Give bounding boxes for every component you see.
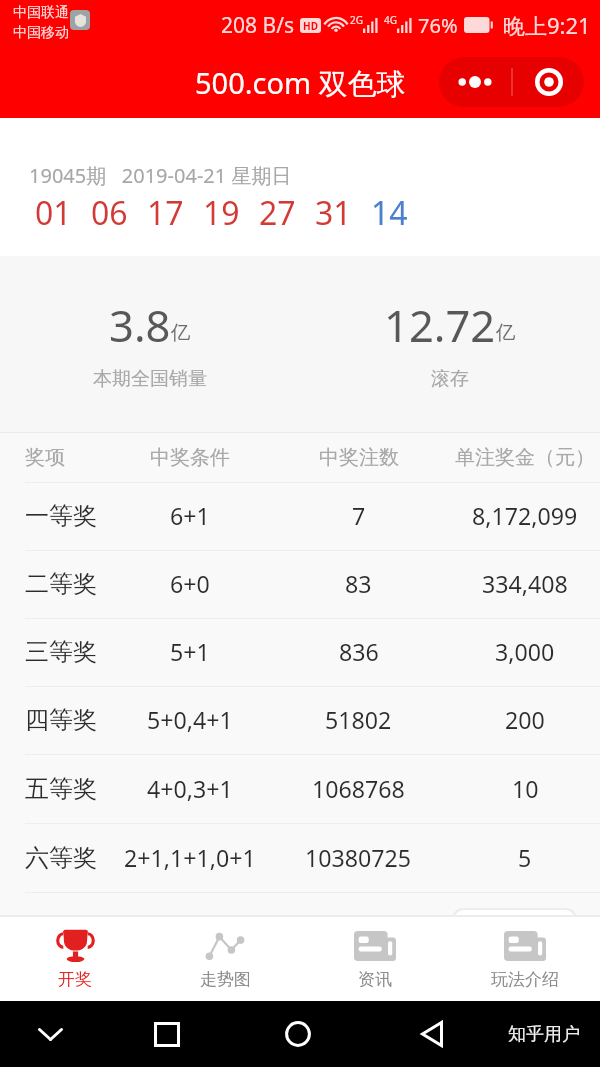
button[interactable]: Close mini program bbox=[513, 57, 584, 107]
button[interactable]: 四等奖 bbox=[0, 686, 600, 754]
staticText: 83 bbox=[345, 568, 372, 600]
button[interactable]: More options bbox=[439, 57, 511, 107]
staticText: 6+1 bbox=[170, 500, 210, 532]
staticText: 8,172,099 bbox=[472, 500, 578, 532]
staticText: 亿 bbox=[496, 320, 516, 345]
staticText: 奖项 bbox=[25, 445, 65, 470]
staticText: 中国移动 bbox=[13, 24, 69, 42]
staticText: 836 bbox=[339, 636, 379, 668]
staticText: 2+1,1+1,0+1 bbox=[124, 842, 256, 874]
staticText: 51802 bbox=[325, 704, 392, 736]
button[interactable]: Recent apps bbox=[133, 1001, 201, 1067]
staticText: 玩法介绍 bbox=[491, 969, 559, 990]
staticText: 晚上9:21 bbox=[503, 10, 591, 40]
button[interactable]: 三等奖 bbox=[0, 618, 600, 686]
staticText: 二等奖 bbox=[25, 569, 97, 599]
button[interactable]: Home bbox=[264, 1001, 332, 1067]
staticText: HD bbox=[303, 19, 318, 33]
staticText: 01 bbox=[35, 191, 72, 235]
staticText: 334,408 bbox=[482, 568, 568, 600]
staticText: 2G bbox=[350, 13, 363, 27]
staticText: 27 bbox=[259, 191, 296, 235]
staticText: 走势图 bbox=[200, 969, 251, 990]
staticText: 中奖注数 bbox=[319, 445, 399, 470]
staticText: 06 bbox=[91, 191, 128, 235]
staticText: 76% bbox=[418, 12, 458, 39]
staticText: 4+0,3+1 bbox=[147, 773, 233, 805]
button[interactable]: 玩法介绍 bbox=[450, 917, 600, 1001]
staticText: 5+1 bbox=[170, 636, 210, 668]
button[interactable]: 奖项 bbox=[0, 432, 600, 482]
button[interactable]: 六等奖 bbox=[0, 823, 600, 892]
button[interactable]: 二等奖 bbox=[0, 550, 600, 618]
staticText: 10380725 bbox=[305, 842, 412, 874]
staticText: 200 bbox=[505, 704, 545, 736]
button[interactable]: 资讯 bbox=[300, 917, 450, 1001]
staticText: 开奖 bbox=[58, 969, 92, 990]
staticText: 单注奖金（元） bbox=[455, 445, 595, 470]
staticText: 19045期 2019-04-21 星期日 bbox=[29, 162, 292, 189]
staticText: 亿 bbox=[171, 320, 191, 345]
staticText: 3.8 bbox=[109, 295, 171, 354]
staticText: 中国联通 bbox=[13, 4, 69, 22]
staticText: 10 bbox=[512, 773, 539, 805]
button[interactable]: Hide keyboard bbox=[16, 1001, 84, 1067]
staticText: 本期全国销量 bbox=[93, 367, 207, 391]
staticText: 滚存 bbox=[431, 367, 469, 391]
staticText: 中奖条件 bbox=[150, 445, 230, 470]
staticText: 4G bbox=[384, 13, 397, 27]
staticText: 208 B/s bbox=[221, 11, 295, 40]
staticText: 12.72 bbox=[384, 295, 496, 354]
staticText: 500.com 双色球 bbox=[195, 63, 406, 103]
staticText: 5+0,4+1 bbox=[147, 704, 233, 736]
staticText: 三等奖 bbox=[25, 637, 97, 667]
staticText: 5 bbox=[518, 842, 532, 874]
button[interactable]: 走势图 bbox=[150, 917, 300, 1001]
staticText: 资讯 bbox=[358, 969, 392, 990]
button[interactable]: 五等奖 bbox=[0, 754, 600, 823]
staticText: 3,000 bbox=[495, 636, 555, 668]
staticText: 14 bbox=[371, 191, 408, 235]
staticText: 7 bbox=[352, 500, 366, 532]
staticText: 六等奖 bbox=[25, 843, 97, 873]
staticText: 6+0 bbox=[170, 568, 210, 600]
button[interactable]: 一等奖 bbox=[0, 482, 600, 550]
staticText: 17 bbox=[147, 191, 184, 235]
staticText: 31 bbox=[315, 191, 352, 235]
staticText: 一等奖 bbox=[25, 501, 97, 531]
button[interactable]: Back bbox=[398, 1001, 466, 1067]
staticText: 知乎用户 bbox=[508, 1023, 580, 1046]
staticText: 1068768 bbox=[312, 773, 405, 805]
staticText: 五等奖 bbox=[25, 774, 97, 804]
staticText: 四等奖 bbox=[25, 705, 97, 735]
staticText: 19 bbox=[203, 191, 240, 235]
button[interactable]: 开奖 bbox=[0, 917, 150, 1001]
